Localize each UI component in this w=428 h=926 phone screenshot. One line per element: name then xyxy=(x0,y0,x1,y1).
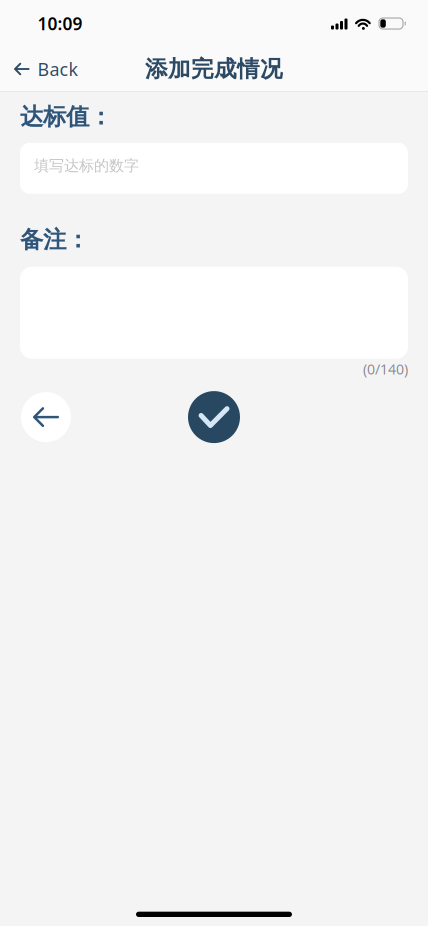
button[interactable]: Confirm xyxy=(188,391,240,443)
button[interactable]: Back xyxy=(0,57,79,81)
staticText: 达标值： xyxy=(20,103,112,131)
button[interactable]: 填写达标的数字 xyxy=(20,143,408,194)
staticText: 填写达标的数字 xyxy=(34,157,139,175)
staticText: 添加完成情况 xyxy=(145,55,283,82)
staticText: Back xyxy=(38,57,79,81)
staticText: 10:09 xyxy=(37,12,82,35)
staticText: 备注： xyxy=(20,226,89,254)
button[interactable]: Back xyxy=(21,392,71,442)
staticText: (0/140) xyxy=(363,360,408,378)
